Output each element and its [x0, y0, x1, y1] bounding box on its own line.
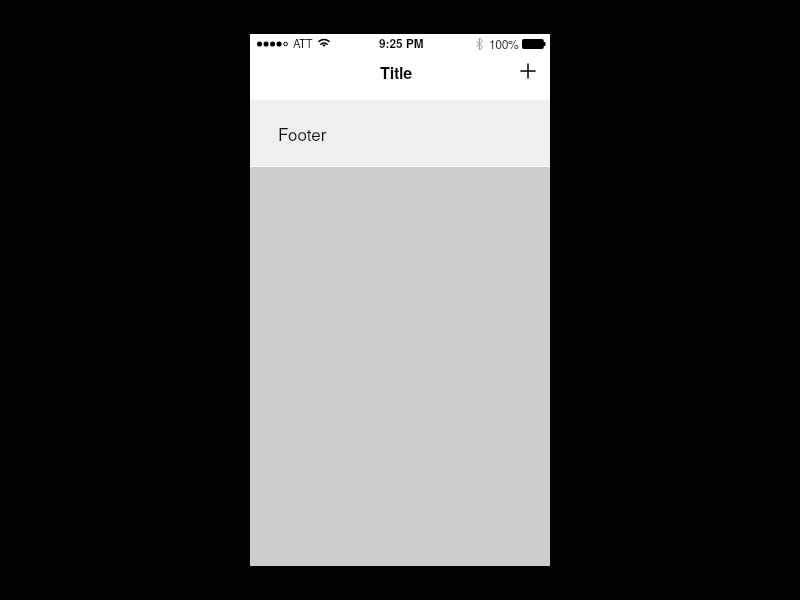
staticText: 9:25 PM	[379, 35, 424, 52]
staticText: Title	[380, 61, 413, 84]
button[interactable]: Footer	[250, 100, 550, 166]
staticText: ATT	[293, 35, 313, 51]
button[interactable]: Add	[512, 55, 544, 87]
staticText: 100%	[489, 35, 519, 52]
staticText: Footer	[278, 121, 327, 145]
